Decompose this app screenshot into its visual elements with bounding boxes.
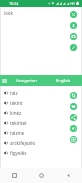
button[interactable]: Save to phrasebook	[70, 103, 77, 110]
button[interactable]: History	[0, 75, 8, 86]
staticText: 10:34	[9, 1, 19, 6]
button[interactable]: arckifejezés	[1, 138, 81, 148]
button[interactable]: Home	[28, 168, 55, 183]
button[interactable]: Listen	[70, 125, 77, 132]
staticText: néz	[10, 90, 18, 96]
button[interactable]: figyelés	[1, 148, 81, 158]
button[interactable]: English	[45, 75, 82, 86]
staticText: néznie	[10, 130, 25, 136]
button[interactable]: Copy	[70, 92, 77, 99]
button[interactable]: Share	[70, 114, 77, 121]
button[interactable]: Fullscreen	[70, 136, 77, 143]
button[interactable]: kinéz	[1, 108, 81, 118]
button[interactable]: Hungarian	[8, 75, 45, 86]
button[interactable]: néznie	[1, 128, 81, 138]
button[interactable]: tekintet	[1, 118, 81, 128]
button[interactable]: Handwriting input	[70, 44, 77, 51]
staticText: figyelés	[10, 150, 27, 156]
button[interactable]: néz	[1, 88, 81, 98]
staticText: kinéz	[10, 110, 22, 116]
button[interactable]: Voice input	[70, 22, 77, 29]
staticText: arckifejezés	[10, 140, 36, 146]
staticText: English	[56, 78, 71, 84]
staticText: Hungarian	[16, 78, 37, 84]
button[interactable]: Back	[55, 168, 82, 183]
button[interactable]: Camera input	[70, 33, 77, 40]
button[interactable]: Recent apps	[0, 168, 28, 183]
button[interactable]: Clear	[70, 11, 77, 18]
staticText: look	[4, 10, 13, 16]
button[interactable]: tekint	[1, 98, 81, 108]
staticText: tekint	[10, 100, 23, 106]
staticText: tekintet	[10, 120, 27, 126]
